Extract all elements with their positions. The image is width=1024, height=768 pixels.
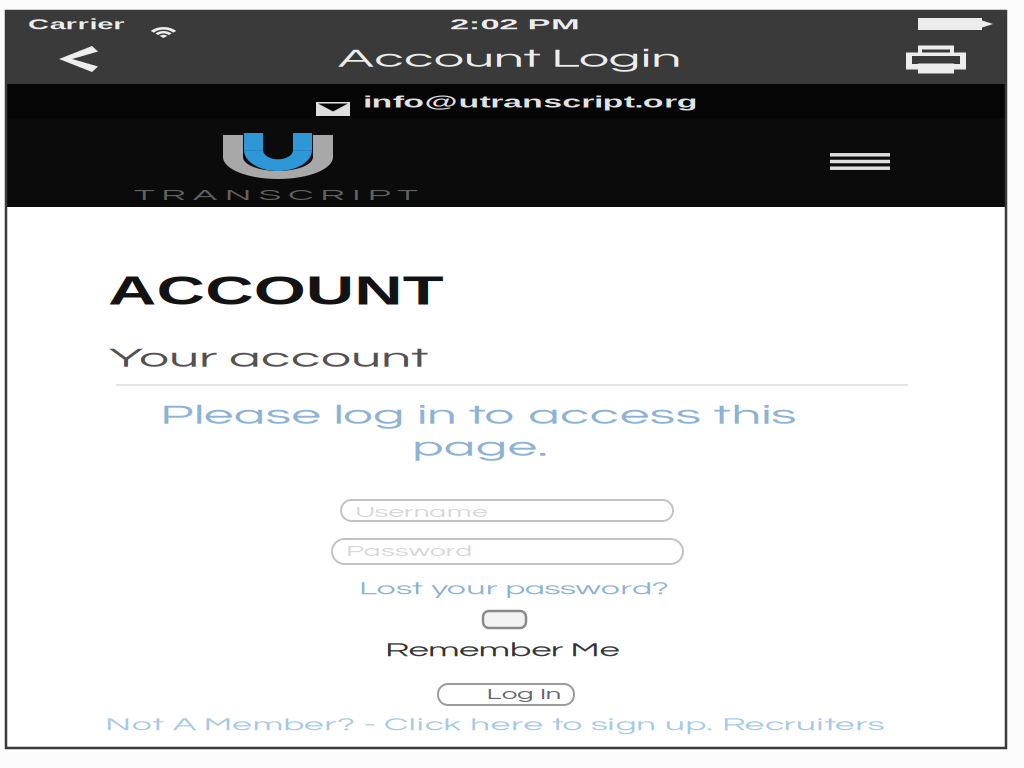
button[interactable]: Back [44,38,113,80]
button[interactable]: Lost your password? [359,580,518,598]
staticText: page. [412,434,480,461]
staticText: info@utranscript.org [363,93,521,111]
staticText: Username [355,505,423,520]
staticText: ACCOUNT [108,267,315,313]
staticText: Your account [109,345,269,372]
staticText: Account Login [338,46,499,72]
button[interactable]: Not A Member? - Click here to sign up. R… [105,716,485,734]
staticText: Password [346,544,411,559]
staticText: Remember Me [385,641,505,660]
staticText: 2:02 PM [450,16,505,32]
button[interactable]: Remember Me [483,611,526,628]
button[interactable]: Log In [438,684,574,705]
staticText: Log In [486,687,525,702]
button[interactable]: Print [894,35,978,73]
button[interactable]: Menu [820,143,900,180]
staticText: T R A N S C R I P T [134,187,259,203]
staticText: Please log in to access this [160,402,480,429]
staticText: Carrier [28,16,77,32]
staticText: Lost your password? [359,580,518,598]
staticText: Not A Member? - Click here to sign up. R… [105,716,485,734]
